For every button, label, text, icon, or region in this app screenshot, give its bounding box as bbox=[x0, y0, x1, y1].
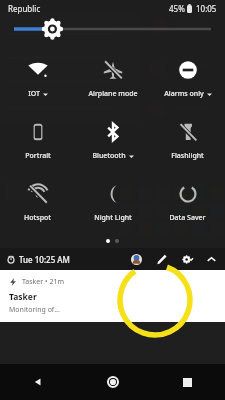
staticText: Republic bbox=[8, 3, 41, 14]
staticText: Bluetooth bbox=[92, 151, 126, 161]
button[interactable]: Tue 10:25 AM bbox=[7, 254, 70, 265]
staticText: Flashlight bbox=[171, 151, 204, 161]
button[interactable]: Settings bbox=[180, 252, 194, 266]
button[interactable]: Collapse bbox=[204, 252, 218, 266]
staticText: Tue 10:25 AM bbox=[19, 254, 70, 265]
staticText: Night Light bbox=[94, 213, 132, 223]
staticText: Hotspot bbox=[24, 213, 51, 223]
button[interactable]: Airplane mode bbox=[75, 47, 150, 109]
button[interactable]: Back bbox=[0, 364, 75, 400]
staticText: Tasker bbox=[9, 291, 37, 303]
button[interactable]: Alarms only bbox=[150, 47, 225, 109]
button[interactable]: Recents bbox=[150, 364, 225, 400]
button[interactable]: Edit bbox=[154, 252, 168, 266]
button[interactable]: Tasker • 21m bbox=[0, 270, 225, 322]
button[interactable]: Hotspot bbox=[0, 171, 75, 233]
button[interactable]: Portrait bbox=[0, 109, 75, 171]
staticText: IOT bbox=[28, 89, 40, 99]
staticText: 45% bbox=[169, 3, 185, 14]
button[interactable]: Data Saver bbox=[150, 171, 225, 233]
button[interactable]: Brightness bbox=[0, 17, 225, 41]
staticText: Tasker • 21m bbox=[22, 277, 65, 287]
staticText: Alarms only bbox=[164, 89, 204, 99]
button[interactable]: Home bbox=[75, 364, 150, 400]
button[interactable]: IOT bbox=[0, 47, 75, 109]
button[interactable]: Bluetooth bbox=[75, 109, 150, 171]
button[interactable]: Night Light bbox=[75, 171, 150, 233]
button[interactable]: User bbox=[131, 254, 142, 265]
button[interactable]: Flashlight bbox=[150, 109, 225, 171]
staticText: Data Saver bbox=[169, 213, 206, 223]
staticText: 10:05 bbox=[196, 3, 217, 14]
staticText: Portrait bbox=[25, 151, 51, 161]
staticText: Monitoring of... bbox=[9, 305, 60, 315]
staticText: Airplane mode bbox=[88, 89, 138, 99]
